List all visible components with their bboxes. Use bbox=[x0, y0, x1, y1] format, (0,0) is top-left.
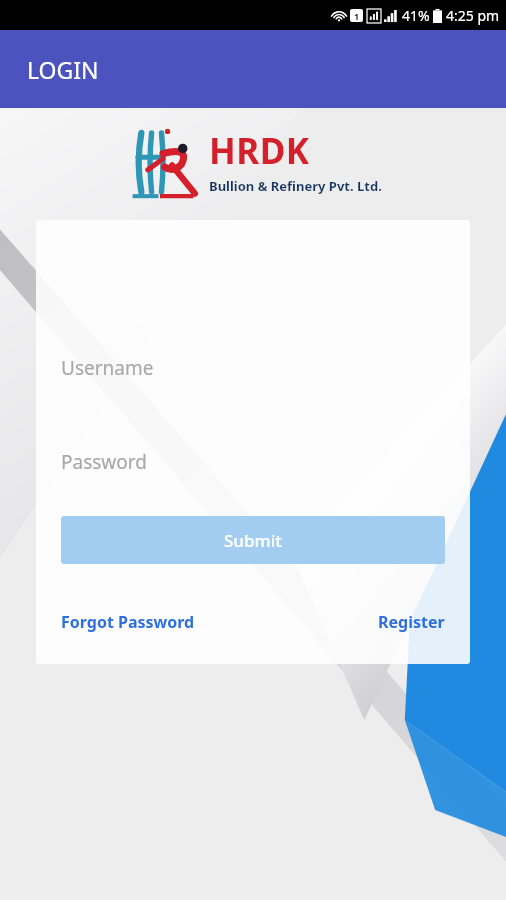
staticText: 4:25 pm bbox=[446, 6, 500, 25]
button[interactable]: Password bbox=[61, 445, 445, 479]
staticText: LOGIN bbox=[27, 54, 99, 85]
staticText: Forgot Password bbox=[61, 611, 195, 633]
staticText: 41% bbox=[402, 6, 430, 25]
button[interactable]: Username bbox=[61, 351, 445, 385]
staticText: Username bbox=[61, 355, 154, 381]
staticText: Submit bbox=[224, 529, 282, 552]
staticText: HRDK bbox=[209, 127, 310, 175]
button[interactable]: Register bbox=[378, 607, 445, 637]
staticText: Password bbox=[61, 449, 147, 475]
button[interactable]: Submit bbox=[61, 516, 445, 564]
button[interactable]: Forgot Password bbox=[61, 607, 195, 637]
staticText: 1 bbox=[354, 10, 360, 22]
staticText: Register bbox=[378, 611, 445, 633]
staticText: Bullion & Refinery Pvt. Ltd. bbox=[209, 177, 382, 195]
